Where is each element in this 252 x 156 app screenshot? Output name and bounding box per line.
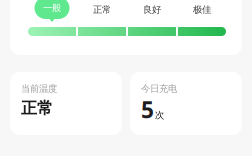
staticText: 正常 [93, 4, 111, 15]
staticText: 正常 [21, 98, 53, 118]
staticText: 一般 [43, 2, 61, 14]
button[interactable]: 当前温度 [10, 72, 122, 135]
staticText: 当前温度 [21, 83, 57, 94]
staticText: 次 [155, 109, 164, 121]
staticText: 今日充电 [141, 83, 177, 94]
staticText: 5 [141, 94, 154, 125]
staticText: 极佳 [193, 4, 211, 15]
staticText: 良好 [143, 4, 161, 15]
button[interactable]: 今日充电 [130, 72, 242, 135]
